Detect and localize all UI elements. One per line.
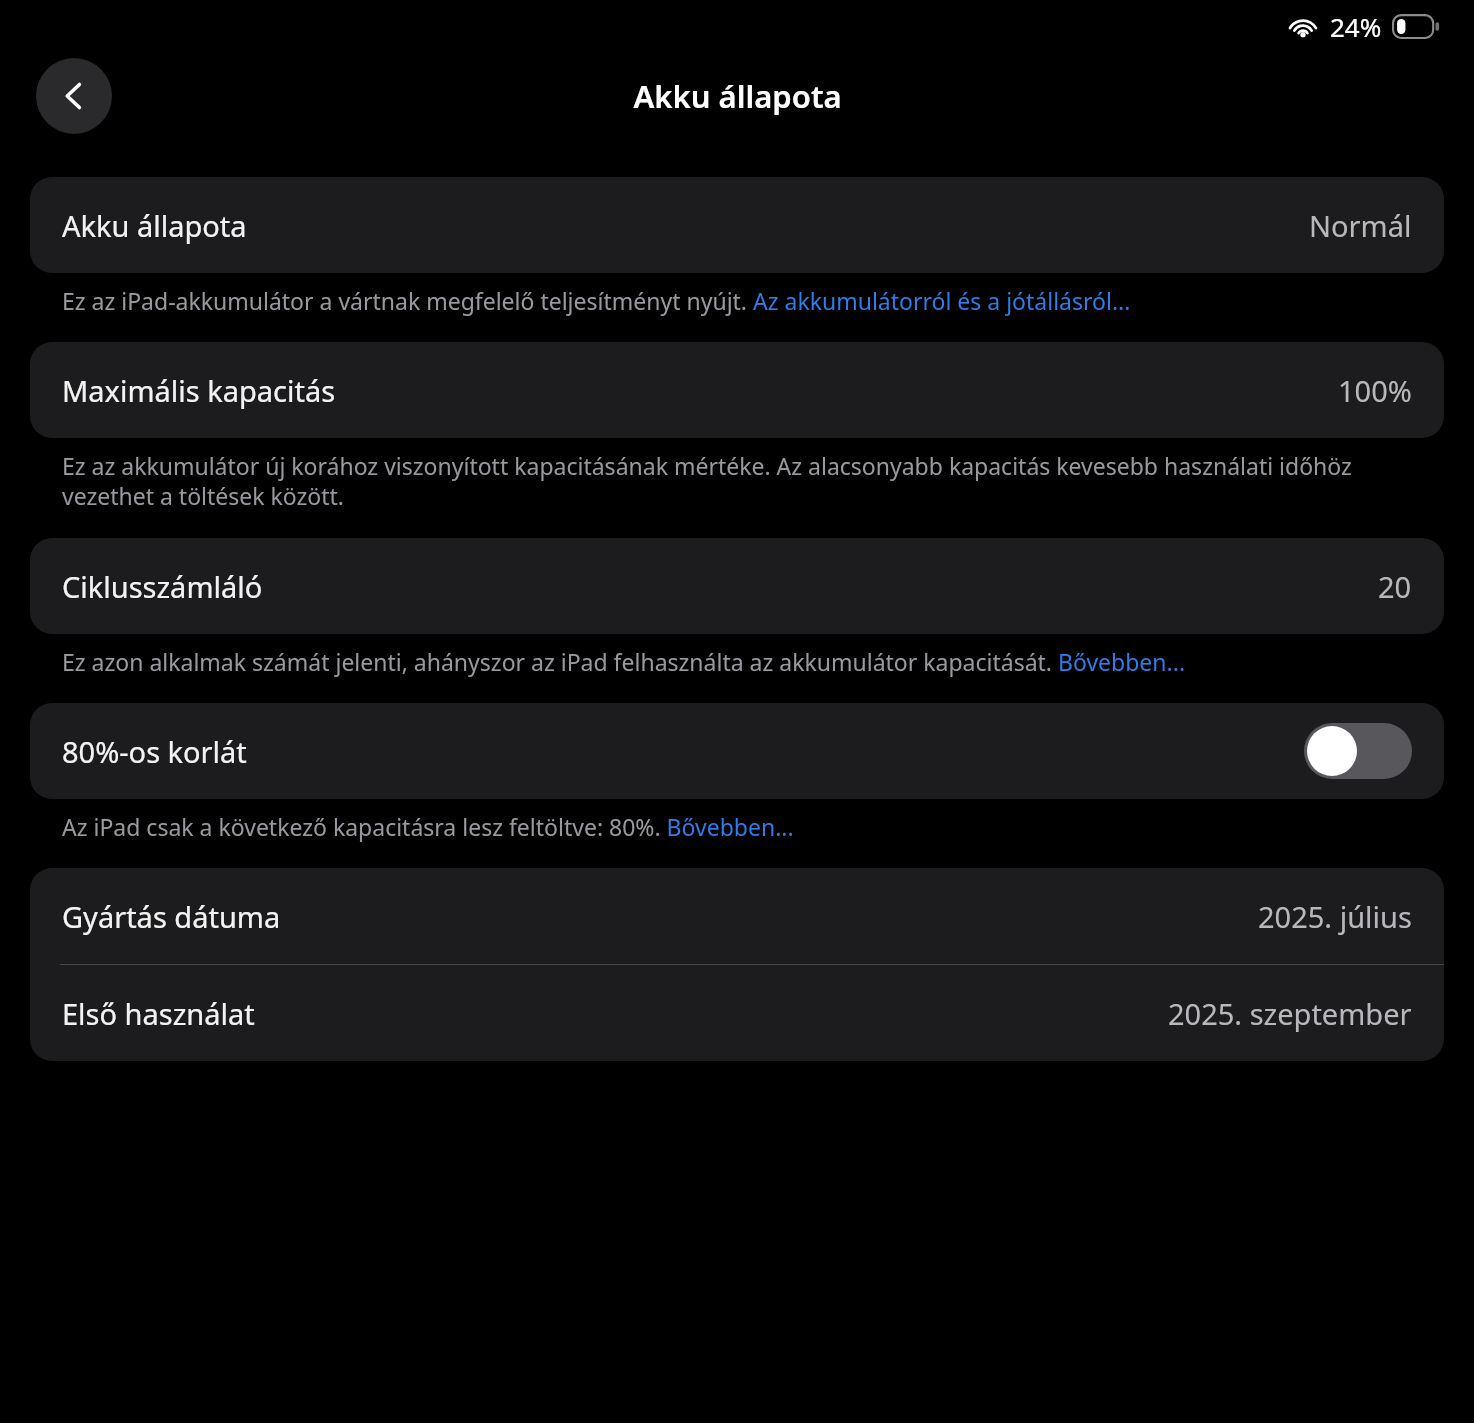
- staticText: Gyártás dátuma: [62, 897, 281, 936]
- staticText: Akku állapota: [62, 206, 247, 245]
- staticText: 100%: [1338, 371, 1412, 410]
- staticText: 2025. július: [1258, 897, 1412, 936]
- button[interactable]: 80% limit toggle: [1304, 723, 1412, 779]
- staticText: Maximális kapacitás: [62, 371, 336, 410]
- staticText: Ez az iPad-akkumulátor a vártnak megfele…: [62, 285, 1131, 316]
- staticText: 2025. szeptember: [1168, 994, 1412, 1033]
- button[interactable]: Első használat: [30, 965, 1444, 1061]
- staticText: Első használat: [62, 994, 255, 1033]
- button[interactable]: Gyártás dátuma: [30, 868, 1444, 964]
- staticText: Ciklusszámláló: [62, 567, 263, 606]
- button[interactable]: Akku állapota: [30, 177, 1444, 273]
- button[interactable]: Ciklusszámláló: [30, 538, 1444, 634]
- staticText: Ez azon alkalmak számát jelenti, ahánysz…: [62, 646, 1186, 677]
- staticText: 20: [1378, 567, 1412, 606]
- staticText: Akku állapota: [633, 75, 842, 117]
- staticText: Normál: [1309, 206, 1412, 245]
- staticText: Az iPad csak a következő kapacitásra les…: [62, 811, 794, 842]
- staticText: 24%: [1330, 9, 1382, 44]
- staticText: Ez az akkumulátor új korához viszonyítot…: [62, 450, 1412, 512]
- staticText: 80%-os korlát: [62, 732, 247, 771]
- button[interactable]: Back: [36, 58, 112, 134]
- button[interactable]: Maximális kapacitás: [30, 342, 1444, 438]
